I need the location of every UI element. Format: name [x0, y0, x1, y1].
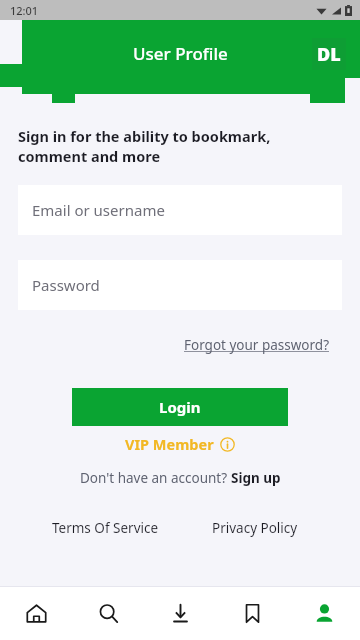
button[interactable]: Bookmarks: [216, 587, 288, 640]
staticText: Password: [32, 275, 100, 295]
button[interactable]: Search: [72, 587, 144, 640]
other: VIP info: [220, 437, 235, 452]
staticText: DL: [317, 42, 341, 67]
button[interactable]: Forgot your password?: [180, 332, 334, 358]
staticText: VIP Member: [125, 434, 214, 454]
button[interactable]: DL logo: [312, 38, 346, 70]
button[interactable]: Privacy Policy: [180, 519, 330, 537]
button[interactable]: Terms Of Service: [30, 519, 180, 537]
button[interactable]: VIP Member: [0, 434, 360, 454]
button[interactable]: Home: [0, 587, 72, 640]
staticText: User Profile: [133, 42, 228, 65]
staticText: 12:01: [10, 3, 39, 18]
button[interactable]: Profile: [288, 587, 360, 640]
staticText: Terms Of Service: [52, 519, 159, 537]
staticText: Sign in for the ability to bookmark, com…: [18, 126, 271, 167]
button[interactable]: Email or username: [18, 185, 342, 235]
button[interactable]: Downloads: [144, 587, 216, 640]
button[interactable]: Password: [18, 260, 342, 310]
button[interactable]: Sign up: [231, 469, 281, 487]
staticText: Privacy Policy: [212, 519, 298, 537]
staticText: Don't have an account?: [80, 469, 231, 487]
staticText: Email or username: [32, 200, 165, 220]
button[interactable]: Login: [72, 388, 288, 426]
staticText: Forgot your password?: [184, 336, 330, 354]
staticText: Sign up: [231, 469, 281, 487]
staticText: Login: [159, 397, 201, 417]
